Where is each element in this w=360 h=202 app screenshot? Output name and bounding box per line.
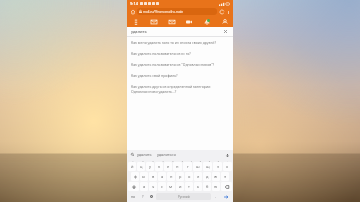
- button[interactable]: Mail: [149, 17, 158, 26]
- staticText: 5: [168, 159, 178, 162]
- staticText: удалить: [131, 29, 147, 34]
- button[interactable]: ж: [212, 172, 220, 181]
- staticText: ф: [134, 174, 137, 179]
- staticText: удалиться: [157, 152, 176, 157]
- button[interactable]: й: [128, 162, 136, 171]
- button[interactable]: у: [146, 162, 154, 171]
- staticText: пя: [131, 194, 136, 199]
- button[interactable]: з: [213, 162, 222, 171]
- button[interactable]: Go: [221, 192, 231, 201]
- button[interactable]: ю: [212, 182, 220, 191]
- staticText: 3: [148, 159, 158, 162]
- button[interactable]: mail.ru/?from=mailru.main: [137, 8, 217, 15]
- button[interactable]: э: [221, 172, 229, 181]
- button[interactable]: ш: [193, 162, 202, 171]
- staticText: 7: [187, 159, 196, 162]
- button[interactable]: Shift: [128, 182, 139, 191]
- button[interactable]: с: [158, 182, 166, 191]
- button[interactable]: Voice input: [224, 152, 230, 158]
- button[interactable]: Как удалить свой профиль?: [127, 70, 233, 81]
- staticText: а: [161, 174, 164, 179]
- button[interactable]: д: [203, 172, 211, 181]
- button[interactable]: More options: [225, 9, 231, 15]
- staticText: Как удалить пользователя из кс го?: [131, 51, 191, 56]
- staticText: 2: [138, 159, 148, 162]
- button[interactable]: пя: [129, 192, 138, 201]
- staticText: 9: [205, 159, 214, 162]
- staticText: щ: [206, 164, 210, 169]
- staticText: т: [188, 184, 190, 189]
- button[interactable]: ь: [194, 182, 202, 191]
- button[interactable]: м: [167, 182, 175, 191]
- staticText: е: [167, 164, 170, 169]
- staticText: о: [188, 174, 191, 179]
- button[interactable]: н: [173, 162, 182, 171]
- button[interactable]: к: [155, 162, 163, 171]
- staticText: й: [131, 164, 134, 169]
- staticText: у: [149, 164, 152, 169]
- button[interactable]: Notifications: [202, 17, 211, 26]
- button[interactable]: Settings: [148, 192, 154, 201]
- staticText: ж: [214, 174, 218, 179]
- button[interactable]: Как удалить пользователя из "Одноклассни…: [127, 59, 233, 70]
- staticText: я: [143, 184, 146, 189]
- staticText: л: [197, 174, 200, 179]
- staticText: Как удалить друга из определенной катего…: [131, 84, 211, 89]
- button[interactable]: т: [185, 182, 193, 191]
- button[interactable]: р: [176, 172, 184, 181]
- button[interactable]: .: [213, 192, 219, 201]
- button[interactable]: Home: [129, 8, 136, 15]
- staticText: 8: [196, 159, 205, 162]
- staticText: ю: [214, 184, 218, 189]
- button[interactable]: л: [194, 172, 202, 181]
- button[interactable]: Search: [130, 152, 135, 157]
- staticText: ш: [196, 164, 200, 169]
- button[interactable]: б: [203, 182, 211, 191]
- button[interactable]: ц: [137, 162, 145, 171]
- button[interactable]: о: [185, 172, 193, 181]
- button[interactable]: п: [167, 172, 175, 181]
- button[interactable]: Как удалить пользователя из кс го?: [127, 48, 233, 59]
- button[interactable]: Emoji: [140, 192, 146, 201]
- button[interactable]: щ: [203, 162, 212, 171]
- button[interactable]: Menu: [131, 17, 140, 26]
- button[interactable]: ф: [131, 172, 139, 181]
- button[interactable]: Reload: [218, 8, 225, 15]
- button[interactable]: а: [158, 172, 166, 181]
- staticText: з: [217, 164, 219, 169]
- staticText: х: [226, 164, 229, 169]
- staticText: к: [158, 164, 161, 169]
- button[interactable]: Messages: [167, 17, 176, 26]
- button[interactable]: Account: [220, 17, 229, 26]
- staticText: Как удалить свой профиль?: [131, 73, 178, 78]
- button[interactable]: Русский: [156, 193, 211, 200]
- button[interactable]: ч: [149, 182, 157, 191]
- staticText: 6: [178, 159, 187, 162]
- staticText: ?: [142, 194, 144, 199]
- staticText: с: [161, 184, 163, 189]
- staticText: Одноклассники удалить...?: [131, 89, 177, 94]
- staticText: р: [179, 174, 182, 179]
- staticText: и: [179, 184, 182, 189]
- staticText: удалить: [137, 152, 152, 157]
- staticText: э: [224, 174, 226, 179]
- staticText: н: [176, 164, 179, 169]
- staticText: ч: [152, 184, 155, 189]
- staticText: 4: [158, 159, 168, 162]
- staticText: ц: [140, 164, 143, 169]
- button[interactable]: и: [176, 182, 184, 191]
- button[interactable]: Как удалить друга из определенной катего…: [127, 81, 233, 97]
- button[interactable]: е: [164, 162, 172, 171]
- button[interactable]: в: [149, 172, 157, 181]
- button[interactable]: Как меня удалить кого то из списка своих…: [127, 37, 233, 48]
- button[interactable]: х: [223, 162, 232, 171]
- button[interactable]: Backspace: [221, 182, 232, 191]
- staticText: м: [169, 184, 173, 189]
- staticText: п: [170, 174, 173, 179]
- button[interactable]: Video: [184, 17, 193, 26]
- button[interactable]: г: [183, 162, 192, 171]
- button[interactable]: ы: [140, 172, 148, 181]
- staticText: д: [206, 174, 209, 179]
- button[interactable]: я: [140, 182, 148, 191]
- button[interactable]: Close: [222, 28, 229, 35]
